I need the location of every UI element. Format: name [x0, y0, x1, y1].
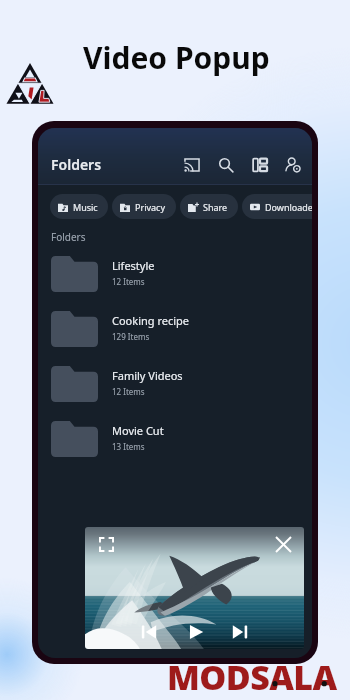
staticText: Share: [203, 201, 228, 213]
staticText: Cooking recipe: [112, 313, 190, 328]
button[interactable]: Lifestyle: [38, 246, 312, 301]
staticText: 12 Items: [112, 276, 145, 287]
staticText: Downloaded: [265, 201, 312, 213]
button[interactable]: Music: [50, 194, 108, 219]
staticText: Folders: [51, 155, 102, 174]
staticText: Privacy: [135, 201, 166, 213]
staticText: 13 Items: [112, 441, 145, 452]
button[interactable]: Family Videos: [38, 356, 312, 411]
button[interactable]: Search: [218, 157, 234, 173]
button[interactable]: View mode: [252, 157, 268, 173]
staticText: Movie Cut: [112, 423, 164, 438]
button[interactable]: Cooking recipe: [38, 301, 312, 356]
staticText: Video Popup: [83, 37, 270, 78]
staticText: Lifestyle: [112, 258, 155, 273]
staticText: Folders: [51, 230, 86, 244]
button[interactable]: Account settings: [285, 157, 301, 173]
button[interactable]: Previous: [141, 624, 157, 640]
staticText: 129 Items: [112, 331, 150, 342]
button[interactable]: Share: [180, 194, 238, 219]
button[interactable]: Play: [188, 624, 204, 640]
button[interactable]: Next: [232, 624, 248, 640]
button[interactable]: Movie Cut: [38, 411, 312, 466]
button[interactable]: Downloaded: [242, 194, 312, 219]
staticText: Music: [73, 201, 98, 213]
staticText: Family Videos: [112, 368, 183, 383]
button[interactable]: Cast: [184, 157, 200, 173]
staticText: 12 Items: [112, 386, 145, 397]
button[interactable]: Close: [276, 537, 291, 552]
button[interactable]: Fullscreen: [99, 537, 114, 552]
button[interactable]: Privacy: [112, 194, 176, 219]
staticText: MODSALA: [167, 654, 337, 700]
